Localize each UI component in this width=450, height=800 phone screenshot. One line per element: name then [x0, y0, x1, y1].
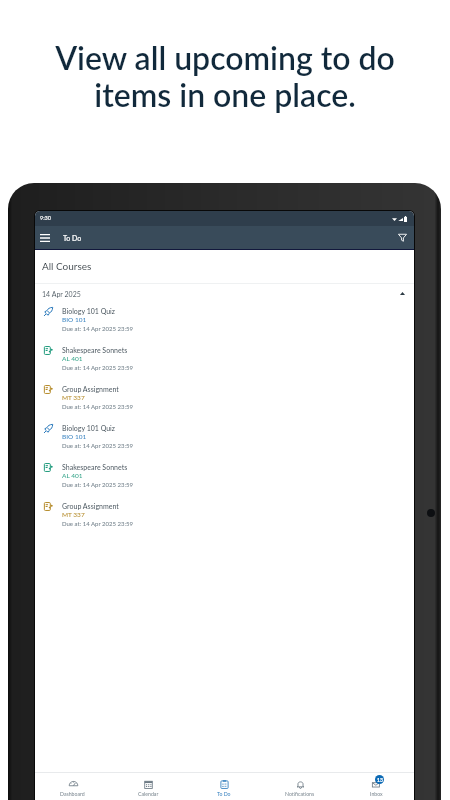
staticText: Shakespeare Sonnets	[62, 346, 128, 354]
button[interactable]: 14 Apr 2025	[35, 284, 414, 303]
staticText: Shakespeare Sonnets	[62, 463, 128, 471]
staticText: Due at: 14 Apr 2025 23:59	[62, 364, 133, 371]
staticText: BIO 101	[62, 316, 87, 324]
staticText: Due at: 14 Apr 2025 23:59	[62, 442, 133, 449]
staticText: 14 Apr 2025	[42, 290, 81, 298]
button[interactable]: To Do	[186, 773, 262, 800]
staticText: 13	[377, 777, 383, 783]
button[interactable]: Calendar	[110, 773, 186, 800]
staticText: Biology 101 Quiz	[62, 424, 115, 432]
staticText: To Do	[217, 791, 231, 797]
staticText: BIO 101	[62, 433, 87, 441]
staticText: Dashboard	[60, 791, 85, 797]
staticText: Group Assignment	[62, 385, 119, 393]
staticText: To Do	[63, 234, 82, 242]
button[interactable]: Shakespeare Sonnets	[35, 459, 414, 498]
button[interactable]: Dashboard	[35, 773, 110, 800]
staticText: Due at: 14 Apr 2025 23:59	[62, 325, 133, 332]
staticText: AL 401	[62, 355, 83, 363]
staticText: Biology 101 Quiz	[62, 307, 115, 315]
staticText: Group Assignment	[62, 502, 119, 510]
button[interactable]: Group Assignment	[35, 498, 414, 537]
staticText: Notifications	[285, 791, 315, 797]
staticText: Due at: 14 Apr 2025 23:59	[62, 481, 133, 488]
button[interactable]: Biology 101 Quiz	[35, 303, 414, 342]
button[interactable]: Filter	[391, 226, 414, 249]
staticText: AL 401	[62, 472, 83, 480]
button[interactable]: Shakespeare Sonnets	[35, 342, 414, 381]
staticText: MT 337	[62, 511, 85, 519]
staticText: Inbox	[370, 791, 383, 797]
button[interactable]: Group Assignment	[35, 381, 414, 420]
button[interactable]: Menu	[35, 226, 54, 249]
staticText: Calendar	[138, 791, 159, 797]
staticText: MT 337	[62, 394, 85, 402]
staticText: All Courses	[42, 260, 92, 272]
button[interactable]: Notifications	[262, 773, 338, 800]
staticText: Due at: 14 Apr 2025 23:59	[62, 520, 133, 527]
button[interactable]: Biology 101 Quiz	[35, 420, 414, 459]
staticText: Due at: 14 Apr 2025 23:59	[62, 403, 133, 410]
button[interactable]: 13	[338, 773, 414, 800]
staticText: View all upcoming to do items in one pla…	[0, 38, 450, 114]
staticText: 9:30	[40, 215, 51, 222]
